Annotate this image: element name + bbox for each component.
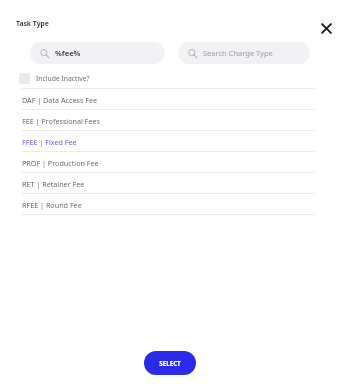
staticText: SELECT — [159, 359, 181, 367]
staticText: PROF | Production Fee — [22, 158, 99, 168]
button[interactable]: RET | Retainer Fee — [0, 173, 340, 194]
staticText: DAF | Data Access Fee — [22, 95, 98, 105]
staticText: Task Type — [16, 19, 49, 28]
button[interactable]: DAF | Data Access Fee — [0, 89, 340, 110]
button[interactable]: %fee% — [30, 42, 165, 64]
button[interactable]: SELECT — [144, 351, 196, 375]
button[interactable]: Close — [314, 16, 338, 40]
button[interactable]: Search Charge Type — [178, 42, 310, 64]
staticText: FEE | Professional Fees — [22, 116, 101, 126]
button[interactable]: FEE | Professional Fees — [0, 110, 340, 131]
button[interactable]: Include Inactive? — [19, 70, 90, 86]
staticText: Search Charge Type — [203, 48, 273, 58]
button[interactable]: PROF | Production Fee — [0, 152, 340, 173]
staticText: Include Inactive? — [36, 74, 90, 83]
button[interactable]: RFEE | Round Fee — [0, 194, 340, 215]
staticText: RET | Retainer Fee — [22, 179, 85, 189]
staticText: FFEE | Fixed Fee — [22, 137, 77, 147]
staticText: %fee% — [55, 48, 81, 58]
button[interactable]: FFEE | Fixed Fee — [0, 131, 340, 152]
staticText: RFEE | Round Fee — [22, 200, 82, 210]
